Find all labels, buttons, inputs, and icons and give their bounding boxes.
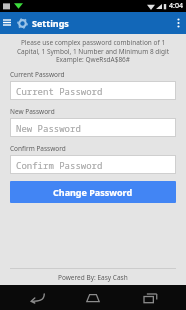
staticText: Current Password — [16, 85, 103, 97]
button[interactable]: New Password — [10, 118, 176, 137]
button[interactable]: Home — [73, 285, 113, 310]
button[interactable]: Recent apps — [130, 285, 170, 310]
staticText: Please use complex password combination … — [12, 38, 174, 64]
staticText: New Password — [16, 122, 81, 134]
button[interactable]: More options — [170, 12, 186, 34]
staticText: 4:04 — [169, 1, 183, 11]
button[interactable]: Change Password — [10, 181, 176, 203]
staticText: Change Password — [53, 186, 133, 198]
staticText: Confirm Password — [10, 144, 66, 153]
staticText: New Password — [10, 107, 55, 116]
staticText: Confirm Password — [16, 159, 103, 171]
staticText: Powered By: Easy Cash — [58, 273, 128, 282]
staticText: Settings — [32, 17, 69, 29]
button[interactable]: Open navigation drawer — [0, 12, 14, 34]
button[interactable]: Confirm Password — [10, 155, 176, 174]
staticText: Current Password — [10, 70, 65, 79]
button[interactable]: Current Password — [10, 81, 176, 100]
button[interactable]: Back — [17, 285, 57, 310]
